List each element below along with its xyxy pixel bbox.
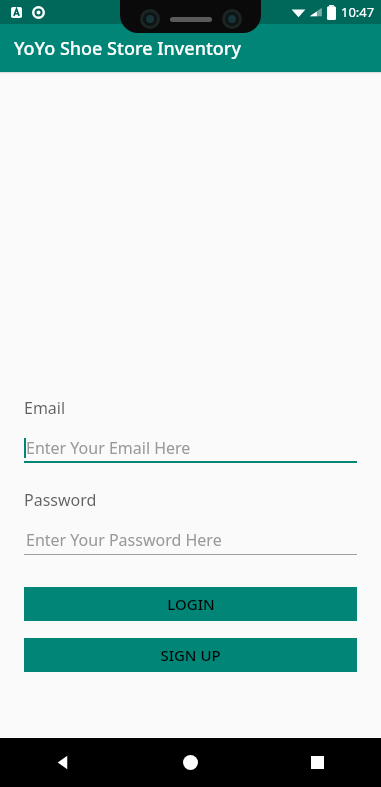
button[interactable]: LOGIN [24,587,357,621]
staticText: Enter Your Password Here [26,529,222,551]
button[interactable]: Enter Your Password Here [24,525,357,555]
button[interactable]: Enter Your Email Here [24,433,357,463]
staticText: Password [24,489,97,511]
staticText: YoYo Shoe Store Inventory [14,36,241,61]
button[interactable]: SIGN UP [24,638,357,672]
staticText: Enter Your Email Here [26,437,191,459]
button[interactable]: Home [127,738,254,787]
staticText: LOGIN [167,594,215,614]
staticText: Email [24,397,66,419]
staticText: 10:47 [341,3,375,21]
button[interactable]: Recent apps [254,738,381,787]
staticText: SIGN UP [160,645,221,665]
button[interactable]: Back [0,738,127,787]
